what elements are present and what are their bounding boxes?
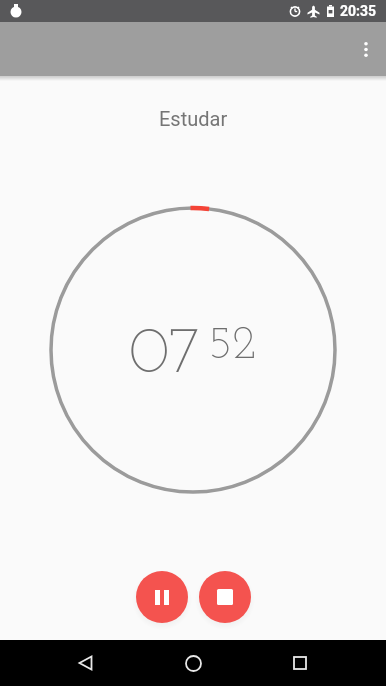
button[interactable] (136, 571, 188, 623)
staticText: 52 (207, 322, 257, 370)
button[interactable] (277, 640, 323, 686)
button[interactable] (199, 571, 251, 623)
button[interactable] (346, 29, 386, 69)
staticText: 07 (129, 322, 201, 388)
button[interactable] (170, 640, 216, 686)
staticText: 20:35 (340, 3, 377, 19)
staticText: Estudar (159, 107, 228, 130)
button[interactable] (62, 640, 108, 686)
